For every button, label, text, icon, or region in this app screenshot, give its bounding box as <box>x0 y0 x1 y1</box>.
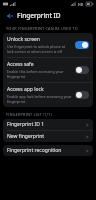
button[interactable]: On <box>75 41 89 49</box>
staticText: Unlock screen <box>7 36 40 43</box>
button[interactable]: New fingerprint <box>3 131 93 142</box>
staticText: FINGERPRINT LIST (1/1) <box>6 112 52 117</box>
button[interactable]: Off <box>75 66 89 74</box>
staticText: Enable this before accessing your finger… <box>7 69 72 79</box>
staticText: Fingerprint ID 1 <box>7 121 45 128</box>
staticText: Fingerprint recognition <box>7 147 62 154</box>
button[interactable]: Access safe <box>3 58 93 82</box>
staticText: Use fingerprint to unlock phone at lock … <box>7 44 72 54</box>
button[interactable]: Access app lock <box>3 83 93 107</box>
staticText: Fingerprint ID <box>17 11 61 20</box>
button[interactable]: Unlock screen <box>3 33 93 57</box>
staticText: New fingerprint <box>7 133 45 140</box>
button[interactable]: Back <box>4 10 15 21</box>
button[interactable]: Fingerprint ID 1 <box>3 119 93 130</box>
staticText: HD <box>78 2 84 7</box>
staticText: Access safe <box>7 61 34 68</box>
staticText: YOUR FINGERPRINT CAN BE USED TO <box>6 26 78 31</box>
staticText: Access app lock <box>7 86 44 93</box>
staticText: Enable app lock before accessing your fi… <box>7 94 72 104</box>
button[interactable]: Fingerprint recognition <box>3 145 93 156</box>
button[interactable]: Off <box>75 91 89 99</box>
